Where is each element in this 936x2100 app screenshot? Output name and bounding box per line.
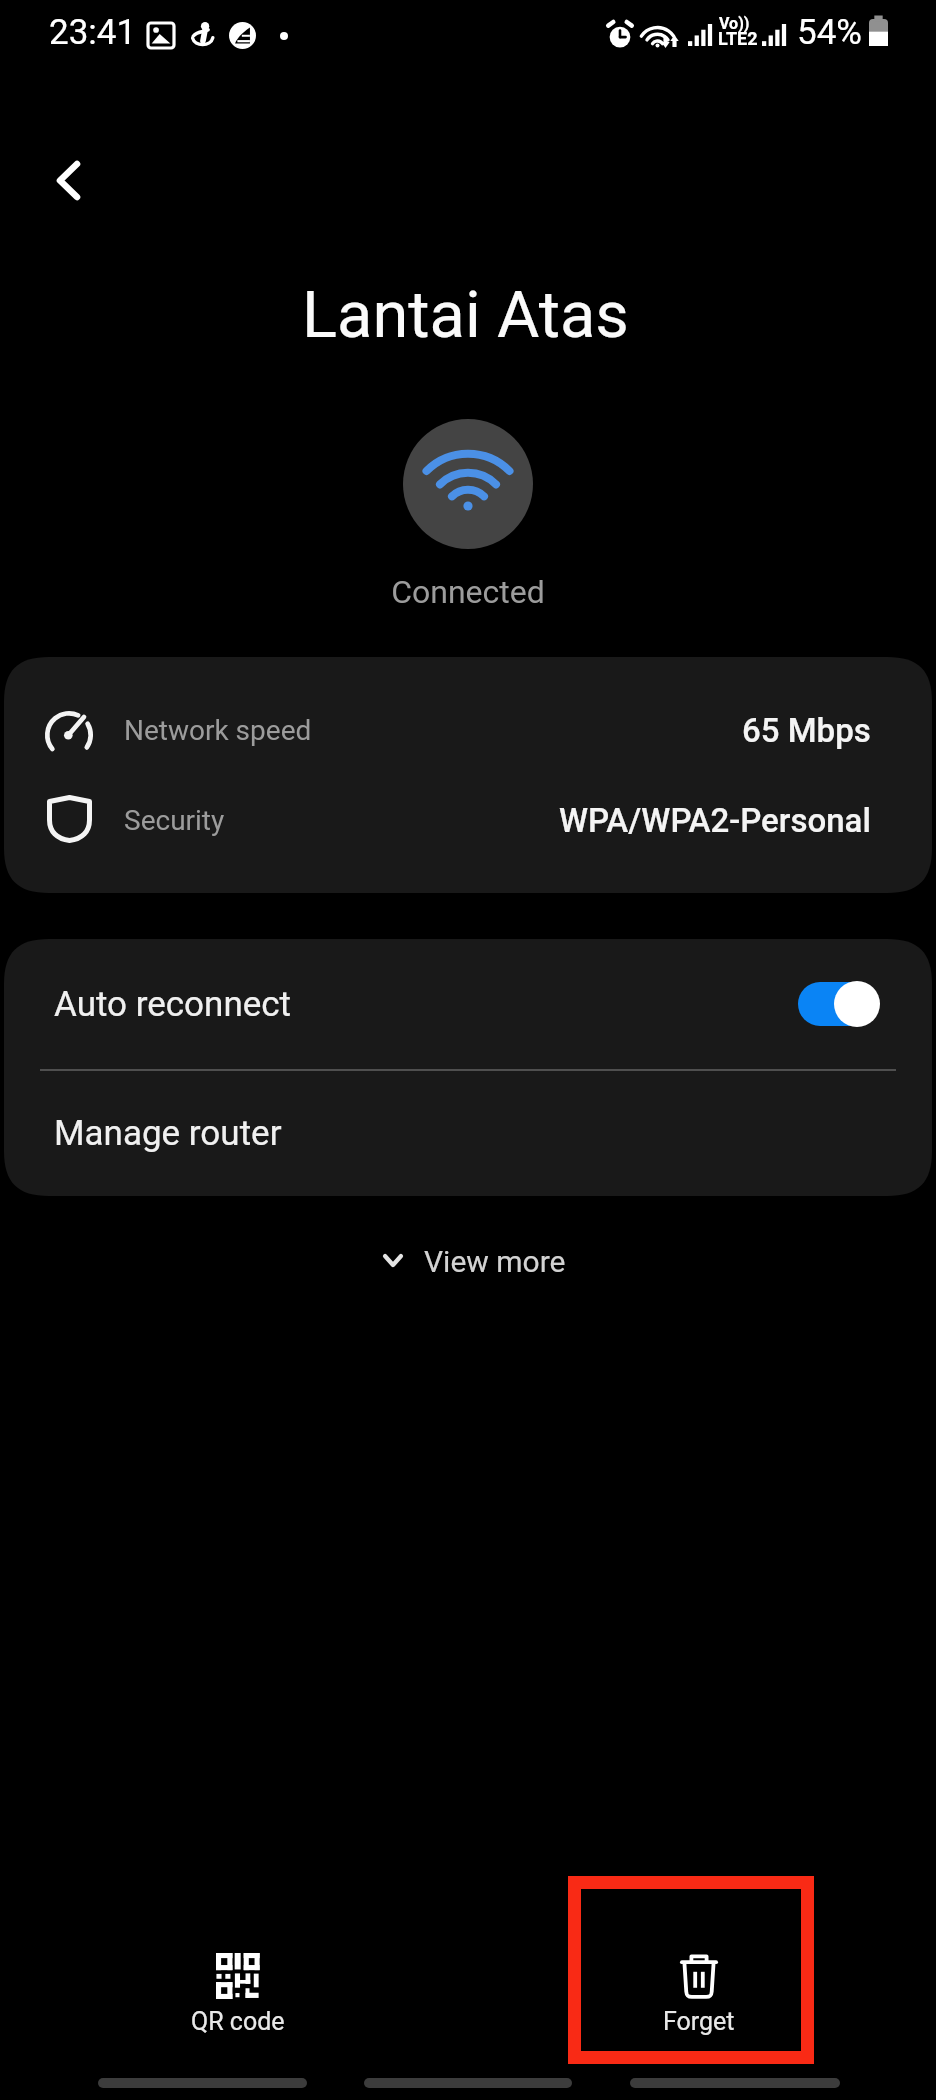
button[interactable]: Navigate up [8,127,129,234]
staticText: Connected [391,573,545,611]
staticText: 54% [797,12,862,53]
staticText: Security [124,804,225,837]
staticText: Forget [663,2007,735,2036]
staticText: LTE2 [718,28,758,49]
staticText: View more [424,1244,566,1279]
button[interactable]: Forget [581,1889,801,2051]
staticText: 23:41 [49,12,137,53]
button[interactable]: QR code [115,1876,361,2064]
staticText: WPA/WPA2-Personal [559,801,871,840]
staticText: Lantai Atas [302,277,629,353]
staticText: Vo)) [719,14,750,33]
button[interactable]: View more [358,1226,584,1298]
staticText: 65 Mbps [742,711,871,750]
button[interactable]: Auto reconnect [4,939,932,1069]
staticText: Auto reconnect [54,984,790,1025]
staticText: QR code [191,2007,285,2036]
staticText: Manage router [54,1113,282,1154]
staticText: Network speed [124,714,312,747]
button[interactable]: Auto reconnect switch [790,981,874,1027]
button[interactable]: Manage router [4,1071,932,1196]
